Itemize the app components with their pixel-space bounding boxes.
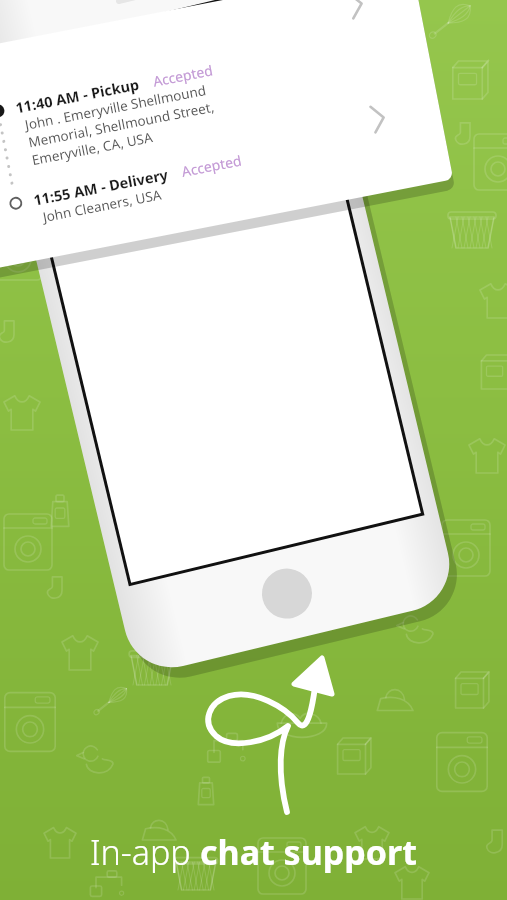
button[interactable]: In-app chat support <box>0 0 507 900</box>
